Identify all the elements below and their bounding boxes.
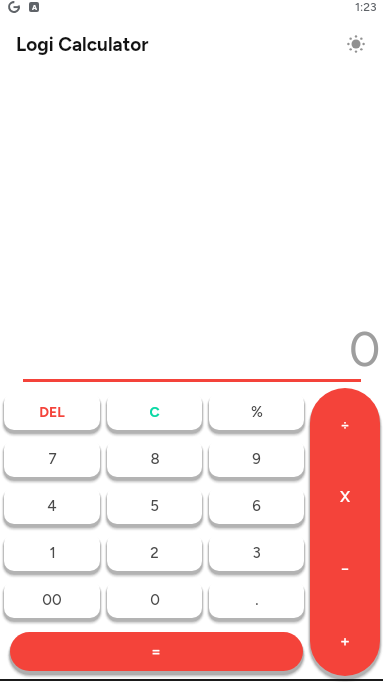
button[interactable]: 00 [4,580,100,618]
staticText: 9 [252,450,261,468]
button[interactable]: 9 [209,439,304,477]
button[interactable]: 3 [209,533,304,571]
button[interactable]: Toggle theme [341,29,371,59]
staticText: 1:23 [355,0,377,13]
staticText: ÷ [340,415,351,434]
button[interactable]: 4 [4,486,100,524]
staticText: 0 [349,319,381,378]
staticText: 00 [42,591,62,609]
button[interactable]: 7 [4,439,100,477]
staticText: 2 [150,544,159,562]
button[interactable]: X [310,460,380,532]
staticText: C [149,404,160,421]
staticText: 7 [48,450,57,468]
button[interactable]: 0 [107,580,202,618]
button[interactable]: ÷ [310,388,380,460]
staticText: DEL [39,404,65,421]
button[interactable]: 1 [4,533,100,571]
staticText: 6 [252,497,261,515]
button[interactable]: C [107,392,202,430]
staticText: 5 [150,497,159,515]
button[interactable]: DEL [4,392,100,430]
staticText: + [340,631,351,650]
staticText: 0 [150,591,160,609]
staticText: A [32,3,37,11]
button[interactable]: . [209,580,304,618]
staticText: = [151,642,162,661]
staticText: % [251,403,263,421]
button[interactable]: = [10,632,303,671]
button[interactable]: 5 [107,486,202,524]
staticText: 1 [49,544,56,562]
button[interactable]: 6 [209,486,304,524]
button[interactable]: − [310,532,380,604]
button[interactable]: 2 [107,533,202,571]
button[interactable]: 8 [107,439,202,477]
staticText: 4 [47,497,57,515]
staticText: − [340,559,351,578]
staticText: 8 [150,450,160,468]
staticText: 3 [252,544,261,562]
button[interactable]: + [310,604,380,676]
button[interactable]: % [209,392,304,430]
staticText: Logi Calculator [16,33,149,56]
staticText: . [255,591,259,609]
staticText: X [340,487,351,506]
